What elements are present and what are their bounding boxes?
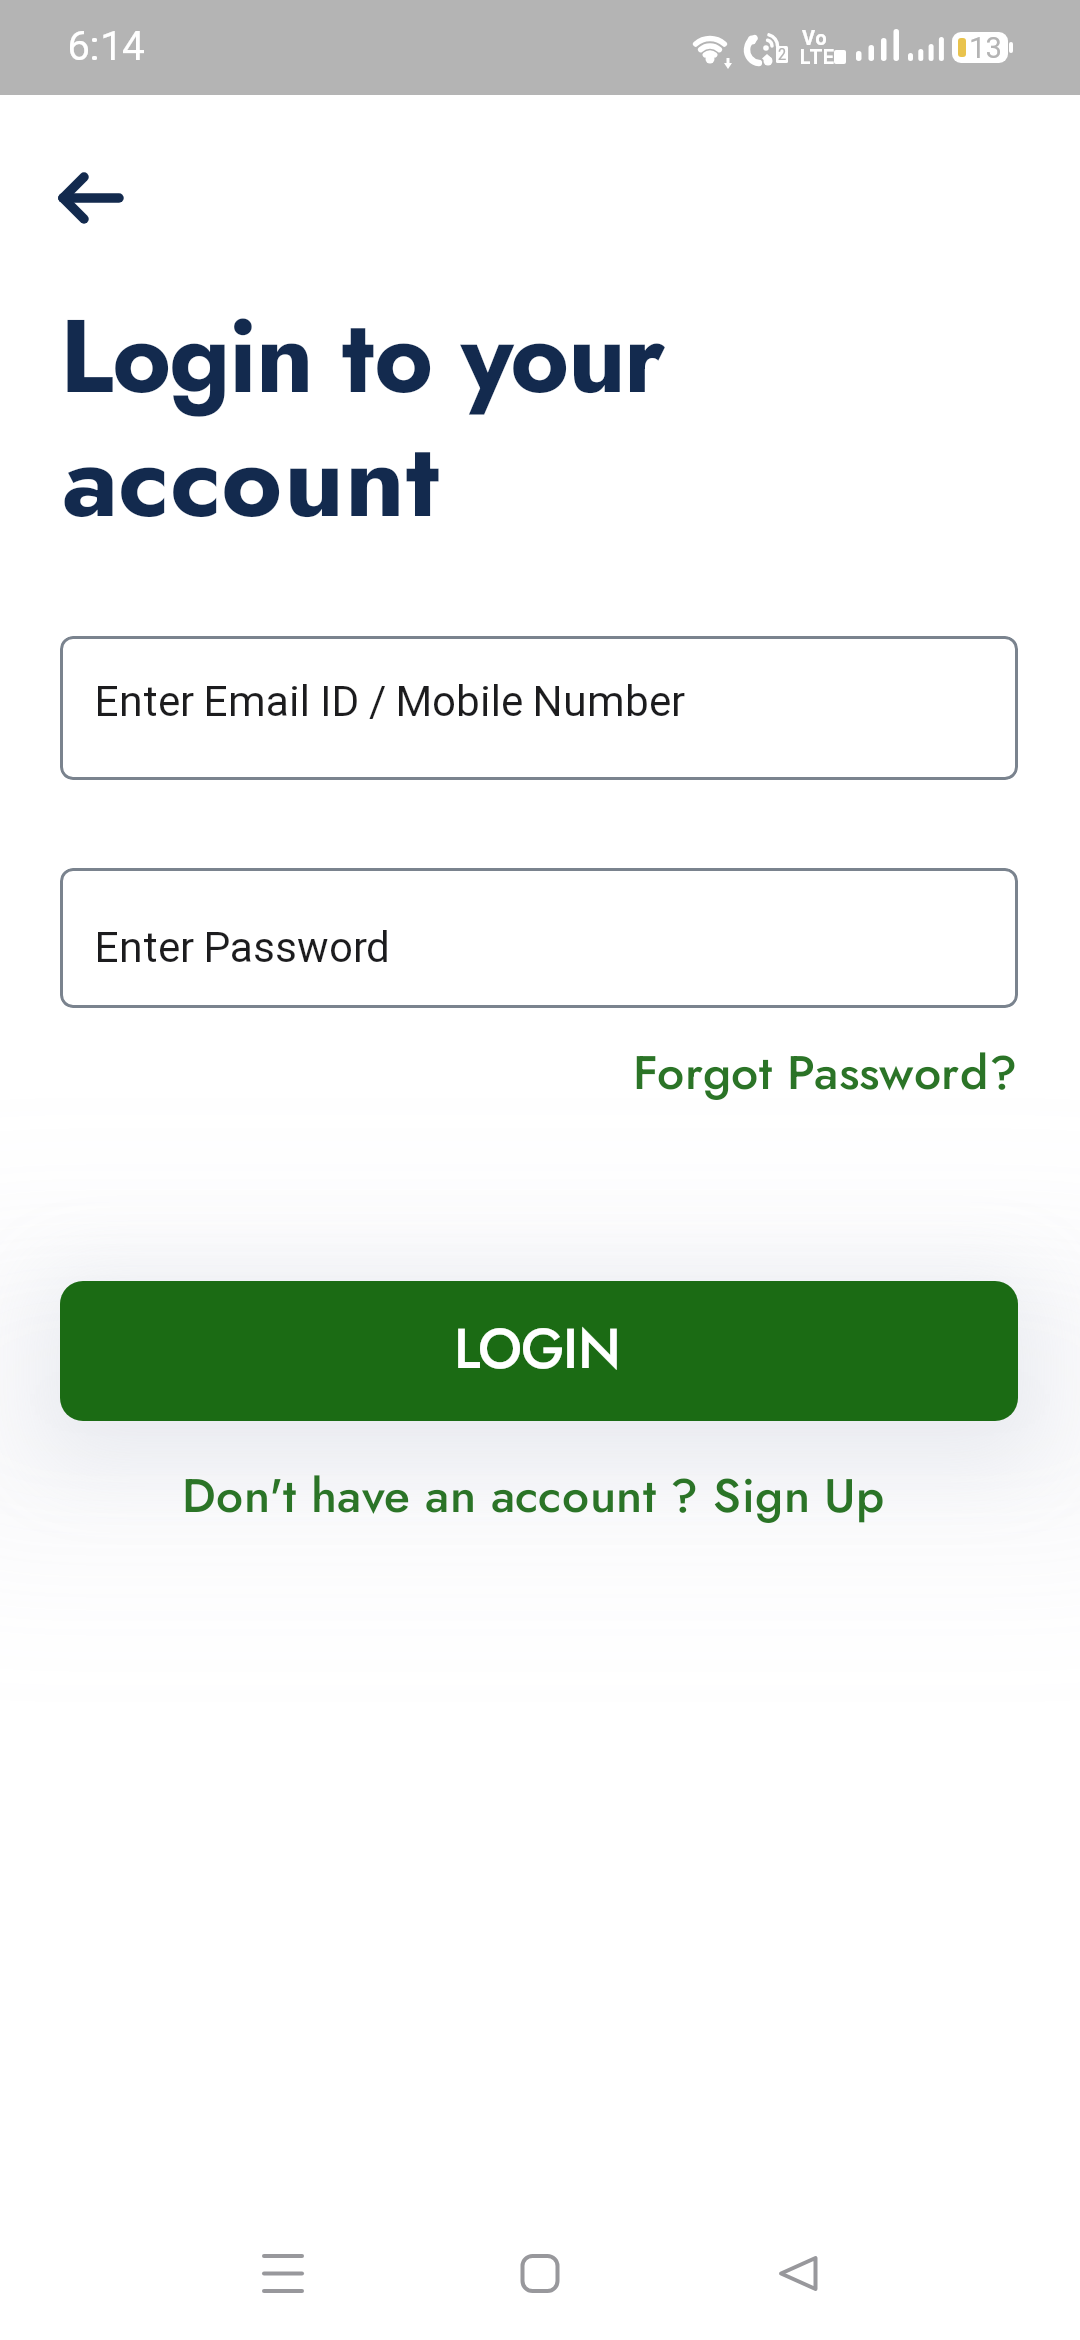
button[interactable] xyxy=(40,158,140,238)
button[interactable] xyxy=(243,2235,323,2315)
button[interactable] xyxy=(60,1281,1018,1421)
button[interactable] xyxy=(185,1465,897,1525)
button[interactable] xyxy=(630,1045,1022,1103)
button[interactable] xyxy=(60,636,1018,780)
button[interactable] xyxy=(60,868,1018,1008)
button[interactable] xyxy=(761,2235,841,2315)
button[interactable] xyxy=(499,2235,579,2315)
